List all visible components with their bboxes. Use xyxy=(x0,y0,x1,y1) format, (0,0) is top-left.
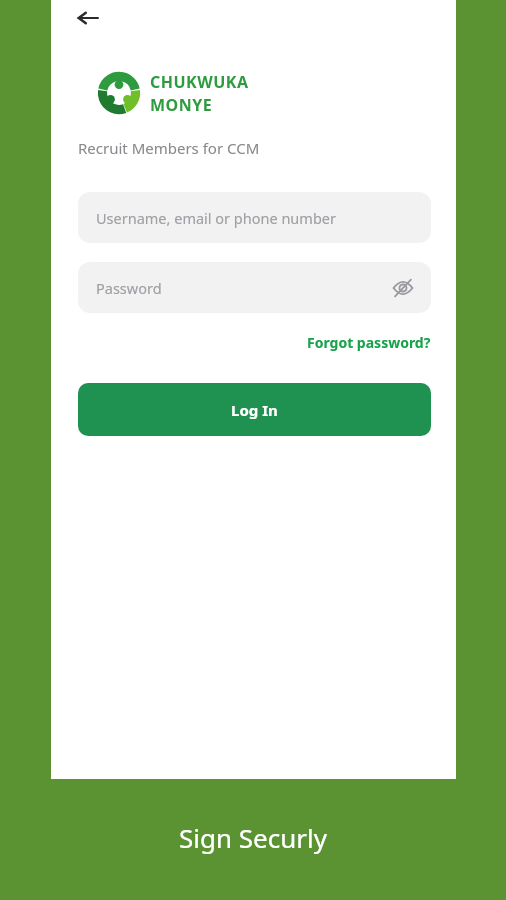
staticText: MONYE xyxy=(150,94,213,116)
button[interactable]: Username, email or phone number xyxy=(78,192,431,243)
staticText: Log In xyxy=(231,400,278,420)
staticText: Password xyxy=(96,278,162,298)
staticText: Recruit Members for CCM xyxy=(78,138,260,158)
button[interactable]: Password xyxy=(78,262,431,313)
button[interactable]: Log In xyxy=(78,383,431,436)
staticText: Username, email or phone number xyxy=(96,208,336,228)
button[interactable]: Show password xyxy=(383,268,423,308)
staticText: Sign Securly xyxy=(179,820,327,855)
staticText: Forgot password? xyxy=(307,333,431,352)
button[interactable]: Forgot password? xyxy=(303,330,435,355)
button[interactable]: Back xyxy=(66,0,110,40)
staticText: CHUKWUKA xyxy=(150,71,249,93)
